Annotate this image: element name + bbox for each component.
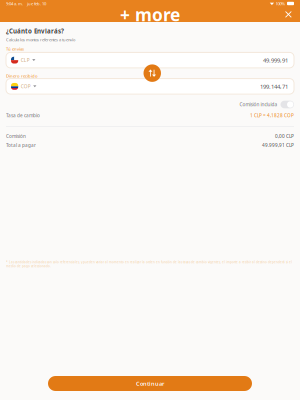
staticText: jue feb. 10 (27, 1, 46, 6)
button[interactable]: Intercambiar monedas (143, 64, 161, 82)
staticText: 49.999,91 CLP (262, 142, 294, 148)
staticText: Dinero recibido (6, 73, 38, 79)
staticText: Comisión incluida (239, 101, 277, 108)
button[interactable]: Continuar (48, 376, 252, 391)
staticText: Tasa de cambio (6, 112, 40, 119)
staticText: Continuar (136, 380, 164, 387)
staticText: Comisión (6, 133, 26, 139)
staticText: 100% (275, 1, 285, 6)
staticText: + more (120, 3, 180, 26)
staticText: COP (21, 83, 31, 90)
staticText: Calcula los montos referentes a tu envío (6, 37, 75, 42)
staticText: 0,00 CLP (275, 133, 294, 139)
button[interactable]: COP (11, 80, 36, 93)
staticText: 1 CLP = 4,1828 COP (250, 112, 294, 119)
staticText: * Las cantidades indicadas son solo refe… (6, 260, 292, 268)
staticText: 199.144,71 (260, 82, 288, 90)
staticText: 9:04 a. m. (6, 1, 23, 6)
button[interactable]: CLP (11, 54, 35, 67)
staticText: Total a pagar (6, 142, 36, 148)
button[interactable]: Cerrar (282, 8, 295, 21)
staticText: 49.999,91 (263, 56, 288, 64)
button[interactable]: Comisión incluida (239, 101, 294, 108)
staticText: CLP (21, 57, 30, 63)
staticText: Tú envías (6, 46, 24, 52)
staticText: ¿Cuánto Enviarás? (6, 27, 64, 35)
